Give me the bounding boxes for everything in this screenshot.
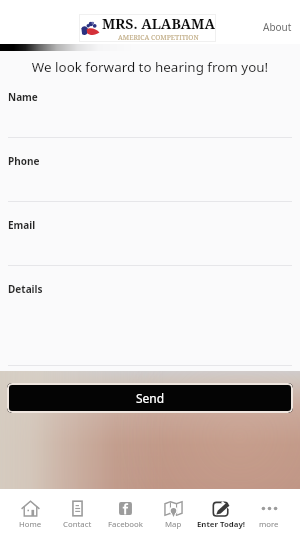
button[interactable]: Map: [149, 489, 197, 533]
button[interactable]: Name: [0, 74, 300, 138]
staticText: AMERICA COMPETITION: [118, 33, 199, 42]
staticText: Name: [8, 90, 38, 104]
staticText: Map: [165, 519, 182, 530]
button[interactable]: Mrs. Alabama America Competition: [79, 14, 216, 42]
button[interactable]: more: [245, 489, 293, 533]
button[interactable]: Phone: [0, 138, 300, 202]
staticText: Facebook: [108, 519, 143, 530]
staticText: Home: [19, 519, 42, 530]
button[interactable]: Send: [7, 383, 293, 413]
staticText: Contact: [63, 519, 92, 530]
button[interactable]: Enter Today!: [197, 489, 245, 533]
button[interactable]: Email: [0, 202, 300, 266]
staticText: We look forward to hearing from you!: [0, 58, 300, 76]
staticText: Phone: [8, 154, 40, 168]
button[interactable]: Facebook: [101, 489, 149, 533]
staticText: Email: [8, 218, 36, 232]
staticText: Send: [136, 390, 165, 406]
staticText: About: [263, 20, 292, 34]
staticText: MRS. ALABAMA: [102, 14, 215, 33]
button[interactable]: Home: [7, 489, 54, 533]
button[interactable]: Details: [0, 266, 300, 366]
button[interactable]: About: [249, 5, 300, 49]
staticText: Details: [8, 282, 43, 296]
staticText: more: [259, 519, 279, 530]
staticText: Enter Today!: [197, 519, 246, 530]
button[interactable]: Contact: [54, 489, 101, 533]
